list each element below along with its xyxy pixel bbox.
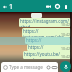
button[interactable]: Back [1,3,8,10]
button[interactable]: Type a message [1,62,58,72]
button[interactable]: https://instagram.org [27,44,71,51]
staticText: https://instagram.com/abcd [20,18,71,27]
button[interactable]: Video call [44,2,52,10]
staticText: 1 [9,2,14,12]
staticText: https://instagram.org [28,44,71,51]
staticText: 10:42 [61,22,70,27]
staticText: 10:42 [61,46,70,51]
button[interactable]: More options [62,3,69,10]
button[interactable]: https://instagram.com/a [25,37,70,44]
button[interactable]: https://instagram.com/abc [22,28,71,37]
button[interactable]: Call [53,2,61,10]
staticText: 10:42 [61,54,70,59]
button[interactable]: https://instagram.com/abcd [19,18,71,27]
staticText: https://youtu.be/xyzab [24,51,71,59]
staticText: 10:42 [61,32,70,37]
staticText: Type a message [9,64,43,70]
staticText: https://instagram.com/abc [23,28,71,37]
button[interactable]: https://youtu.be/xyzab [23,51,71,59]
staticText: https://instagram.com/a [26,37,70,44]
button[interactable]: Voice message [60,61,71,72]
